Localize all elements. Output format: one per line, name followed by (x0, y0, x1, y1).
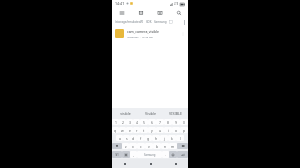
button[interactable]: z (122, 143, 129, 149)
staticText: a (119, 136, 121, 141)
button[interactable]: 8 (164, 119, 172, 125)
staticText: 5 (143, 120, 145, 125)
staticText: o (175, 128, 178, 133)
button[interactable]: d (130, 135, 137, 141)
staticText: f (140, 136, 142, 141)
staticText: j (164, 136, 165, 141)
staticText: Samsung (144, 153, 156, 157)
button[interactable]: VISIBLE (163, 108, 188, 118)
button[interactable]: , (130, 151, 137, 158)
button[interactable]: /storage/emulated/0 (115, 20, 144, 24)
button[interactable]: b (153, 143, 161, 149)
button[interactable]: f (137, 135, 144, 141)
staticText: /storage/emulated/0 (115, 20, 144, 24)
staticText: l (180, 136, 181, 141)
button[interactable]: 2 (119, 119, 126, 125)
button[interactable]: j (160, 135, 168, 141)
staticText: 6 (151, 120, 153, 125)
button[interactable]: y (148, 127, 156, 133)
button[interactable]: Samsung (137, 151, 162, 158)
button[interactable]: m (169, 143, 177, 149)
button[interactable]: Settings (122, 151, 130, 158)
button[interactable]: Back (163, 159, 188, 168)
staticText: 7 (159, 120, 161, 125)
staticText: cam_camera_visible (127, 29, 160, 34)
staticText: 8 (167, 120, 169, 125)
button[interactable]: Visible (138, 108, 163, 118)
button[interactable]: 3 (126, 119, 133, 125)
staticText: z (125, 144, 127, 149)
staticText: v (148, 144, 150, 149)
staticText: SDK (146, 20, 152, 24)
staticText: , (133, 153, 134, 157)
button[interactable]: 9 (172, 119, 180, 125)
button[interactable]: Samsung (154, 20, 167, 24)
staticText: k (171, 136, 173, 141)
button[interactable]: h (152, 135, 160, 141)
button[interactable]: Home (138, 159, 163, 168)
staticText: Visible (145, 111, 156, 116)
button[interactable]: w (119, 127, 126, 133)
button[interactable]: r (133, 127, 140, 133)
staticText: h (155, 136, 158, 141)
button[interactable]: 4 (133, 119, 140, 125)
button[interactable]: !#1 (112, 151, 122, 158)
staticText: 1 (115, 120, 117, 125)
button[interactable]: n (161, 143, 169, 149)
staticText: visible (120, 111, 131, 116)
button[interactable]: More (169, 20, 173, 24)
button[interactable]: o (172, 127, 180, 133)
staticText: 14:41 (115, 1, 125, 6)
button[interactable]: u (156, 127, 164, 133)
staticText: i (168, 128, 169, 133)
staticText: p (183, 128, 186, 133)
staticText: b (156, 144, 159, 149)
button[interactable]: Recents (112, 159, 138, 168)
button[interactable]: i (164, 127, 172, 133)
staticText: Samsung (154, 20, 167, 24)
button[interactable]: t (140, 127, 148, 133)
button[interactable]: 7 (156, 119, 164, 125)
button[interactable]: 0 (180, 119, 188, 125)
button[interactable]: 6 (148, 119, 156, 125)
button[interactable]: a (116, 135, 123, 141)
staticText: VISIBLE (169, 111, 182, 116)
button[interactable]: Menu (112, 7, 131, 18)
staticText: !#1 (115, 153, 119, 157)
button[interactable]: 5 (140, 119, 148, 125)
button[interactable]: cam_camera_visible (112, 26, 188, 40)
button[interactable]: v (145, 143, 153, 149)
staticText: y (151, 128, 153, 133)
button[interactable]: x (129, 143, 137, 149)
staticText: 4 (136, 120, 138, 125)
button[interactable]: q (112, 127, 119, 133)
button[interactable]: Shift (112, 143, 122, 149)
button[interactable]: . (162, 151, 169, 158)
button[interactable]: visible (112, 108, 138, 118)
staticText: 2 (122, 120, 124, 125)
button[interactable]: Storage (131, 7, 150, 18)
button[interactable]: Search (169, 7, 188, 18)
staticText: 9 (175, 120, 177, 125)
staticText: q (114, 128, 117, 133)
button[interactable]: New folder (150, 7, 169, 18)
button[interactable]: c (137, 143, 145, 149)
staticText: x (132, 144, 134, 149)
button[interactable]: Emoji (169, 151, 177, 158)
button[interactable]: Enter (177, 151, 188, 158)
button[interactable]: 1 (112, 119, 119, 125)
staticText: e (129, 128, 131, 133)
button[interactable]: g (144, 135, 152, 141)
staticText: 0 (183, 120, 185, 125)
button[interactable]: s (123, 135, 130, 141)
button[interactable]: k (168, 135, 176, 141)
button[interactable]: Backspace (177, 143, 188, 149)
staticText: LTE (174, 2, 179, 6)
staticText: Yesterday · 12.48 MB (127, 35, 153, 38)
staticText: c (140, 144, 142, 149)
button[interactable]: l (176, 135, 184, 141)
button[interactable]: p (180, 127, 188, 133)
button[interactable]: e (126, 127, 133, 133)
button[interactable]: SDK (146, 20, 152, 24)
